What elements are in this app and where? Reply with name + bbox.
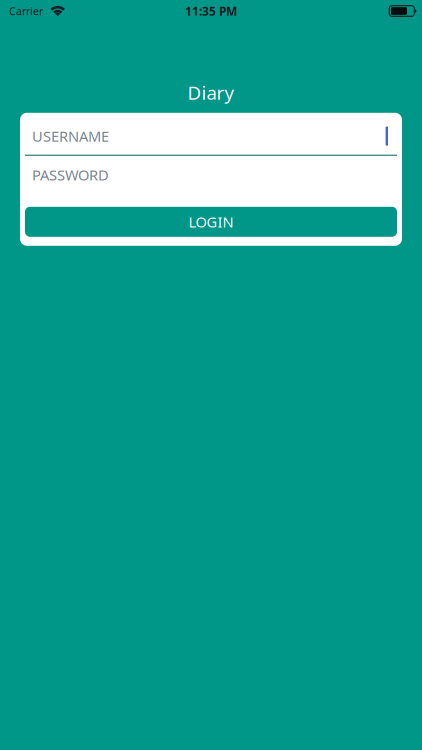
staticText: USERNAME xyxy=(32,126,109,146)
staticText: LOGIN xyxy=(188,212,233,232)
staticText: Carrier xyxy=(9,4,43,18)
staticText: Diary xyxy=(187,80,234,105)
button[interactable]: Password xyxy=(20,156,402,194)
button[interactable]: LOGIN xyxy=(25,207,397,237)
button[interactable]: Username xyxy=(20,113,402,156)
staticText: PASSWORD xyxy=(32,165,109,185)
staticText: 11:35 PM xyxy=(185,3,237,19)
